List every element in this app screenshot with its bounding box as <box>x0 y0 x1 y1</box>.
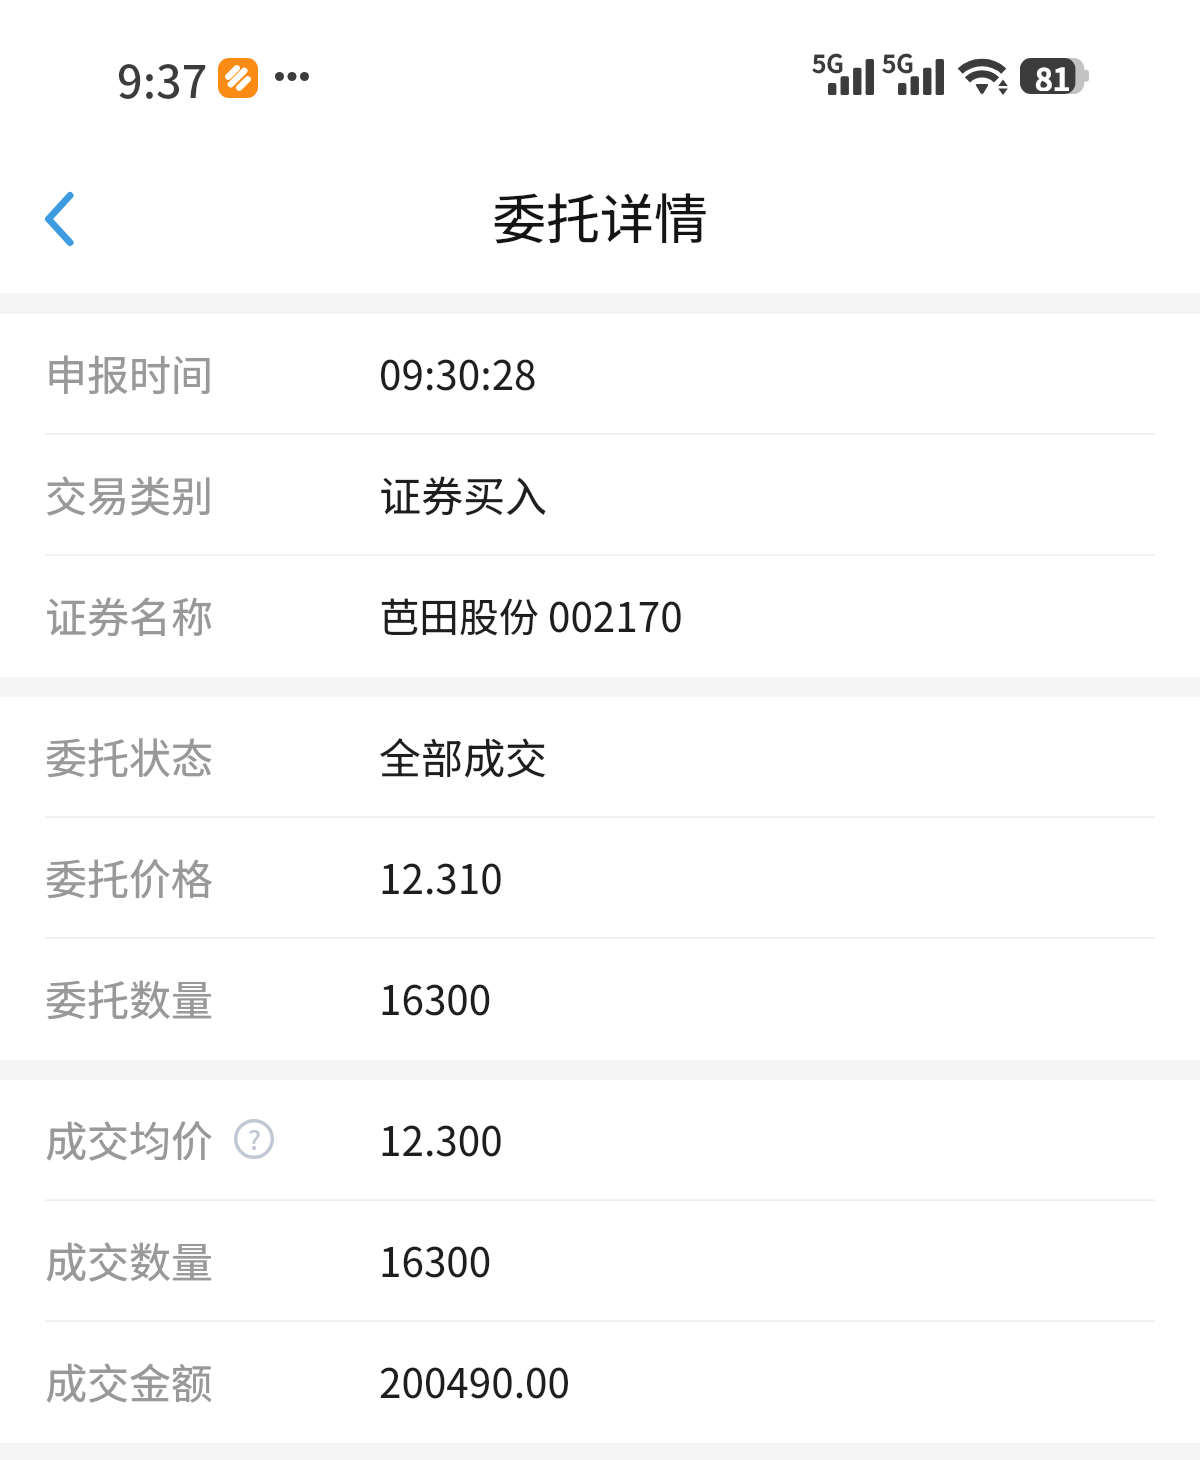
staticText: 委托价格 <box>45 846 214 907</box>
staticText: 成交数量 <box>45 1229 214 1290</box>
button[interactable]: 交易类别 <box>0 435 1200 556</box>
staticText: 交易类别 <box>45 463 214 524</box>
staticText: 证券买入 <box>379 463 548 524</box>
staticText: 5G <box>882 44 914 80</box>
staticText: 申报时间 <box>45 342 214 403</box>
staticText: 证券名称 <box>45 584 214 645</box>
staticText: 81 <box>1035 55 1071 91</box>
staticText: 12.300 <box>379 1110 503 1168</box>
button[interactable]: 证券名称 <box>0 556 1200 677</box>
staticText: 芭田股份 002170 <box>379 586 683 644</box>
staticText: 委托数量 <box>45 967 214 1028</box>
staticText: 16300 <box>379 969 492 1027</box>
button[interactable]: 申报时间 <box>0 314 1200 435</box>
button[interactable]: Help <box>232 1117 276 1161</box>
staticText: 5G <box>812 44 844 80</box>
staticText: 9:37 <box>117 46 208 111</box>
staticText: 成交均价 <box>45 1108 214 1169</box>
button[interactable]: 成交金额 <box>0 1322 1200 1443</box>
staticText: 委托状态 <box>45 725 214 786</box>
staticText: 12.310 <box>379 848 503 906</box>
button[interactable]: Back <box>14 171 110 267</box>
staticText: 成交金额 <box>45 1350 214 1411</box>
staticText: 200490.00 <box>379 1352 570 1410</box>
staticText: 全部成交 <box>379 725 548 786</box>
staticText: ? <box>248 1119 261 1158</box>
staticText: 09:30:28 <box>379 344 537 402</box>
button[interactable]: 成交均价 <box>0 1080 1200 1201</box>
staticText: 16300 <box>379 1231 492 1289</box>
button[interactable]: 委托数量 <box>0 939 1200 1060</box>
button[interactable]: 成交数量 <box>0 1201 1200 1322</box>
button[interactable]: 委托价格 <box>0 818 1200 939</box>
button[interactable]: 委托状态 <box>0 697 1200 818</box>
staticText: 委托详情 <box>492 176 708 254</box>
